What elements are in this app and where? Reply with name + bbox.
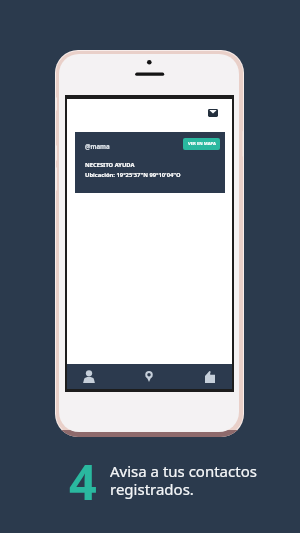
button[interactable]: Mensajes <box>205 106 220 119</box>
button[interactable]: VER EN MAPA <box>183 138 220 150</box>
staticText: @mama <box>85 142 110 150</box>
staticText: Ubicación: 19°25'37"N 99°10'04"O <box>85 171 181 179</box>
staticText: 4 <box>69 448 97 514</box>
button[interactable]: Contactos <box>80 365 97 388</box>
staticText: NECESITO AYUDA <box>85 161 135 169</box>
button[interactable]: Ubicacion <box>140 365 157 388</box>
staticText: Avisa a tus contactos registrados. <box>110 461 257 499</box>
button[interactable]: @mama <box>75 132 225 193</box>
staticText: VER EN MAPA <box>188 141 216 147</box>
button[interactable]: Me gusta <box>201 365 218 388</box>
